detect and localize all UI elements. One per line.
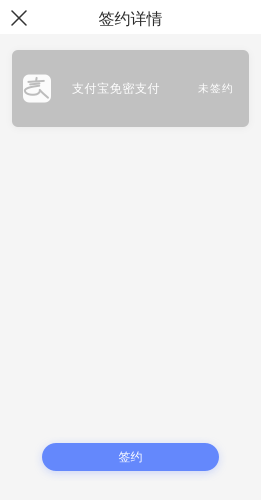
button[interactable]: 签约 (42, 443, 219, 471)
button[interactable]: Close (3, 2, 35, 34)
staticText: 签约 (118, 450, 142, 464)
staticText: 签约详情 (98, 9, 162, 29)
staticText: 未签约 (198, 82, 233, 95)
staticText: 支付宝免密支付 (72, 81, 160, 96)
